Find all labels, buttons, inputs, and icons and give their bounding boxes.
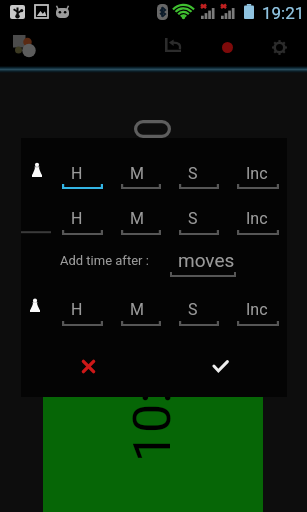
staticText: H (71, 300, 83, 319)
staticText: S (188, 164, 198, 183)
staticText: H (71, 164, 83, 183)
staticText: Add time after : (60, 253, 149, 268)
button[interactable]: M (121, 295, 161, 328)
button[interactable]: Inc (237, 295, 279, 328)
button[interactable]: Inc (237, 159, 279, 191)
button[interactable]: moves (170, 249, 236, 278)
staticText: Inc (246, 300, 268, 319)
staticText: 10:00 (121, 332, 182, 462)
staticText: M (130, 300, 144, 319)
staticText: 19:21 (262, 3, 305, 23)
button[interactable]: S (179, 204, 219, 237)
staticText: Inc (246, 164, 268, 183)
staticText: S (188, 300, 198, 319)
button[interactable]: H (62, 159, 103, 191)
staticText: M (130, 209, 144, 228)
button[interactable]: M (121, 204, 161, 237)
button[interactable]: Inc (237, 204, 279, 237)
button[interactable]: Settings (265, 33, 293, 61)
button[interactable]: M (121, 159, 161, 191)
staticText: S (188, 209, 198, 228)
staticText: H (71, 209, 83, 228)
button[interactable]: Cancel (44, 345, 132, 387)
button[interactable]: S (179, 295, 219, 328)
button[interactable]: Undo (159, 31, 187, 59)
button[interactable]: H (62, 295, 103, 328)
button[interactable]: Record (213, 33, 241, 61)
button[interactable]: App icon (12, 33, 37, 58)
button[interactable]: H (62, 204, 103, 237)
button[interactable]: Confirm (176, 345, 264, 387)
button[interactable]: 10:00 (43, 200, 263, 512)
staticText: Inc (246, 209, 268, 228)
button[interactable]: S (179, 159, 219, 191)
staticText: moves (178, 249, 235, 271)
staticText: M (130, 164, 144, 183)
